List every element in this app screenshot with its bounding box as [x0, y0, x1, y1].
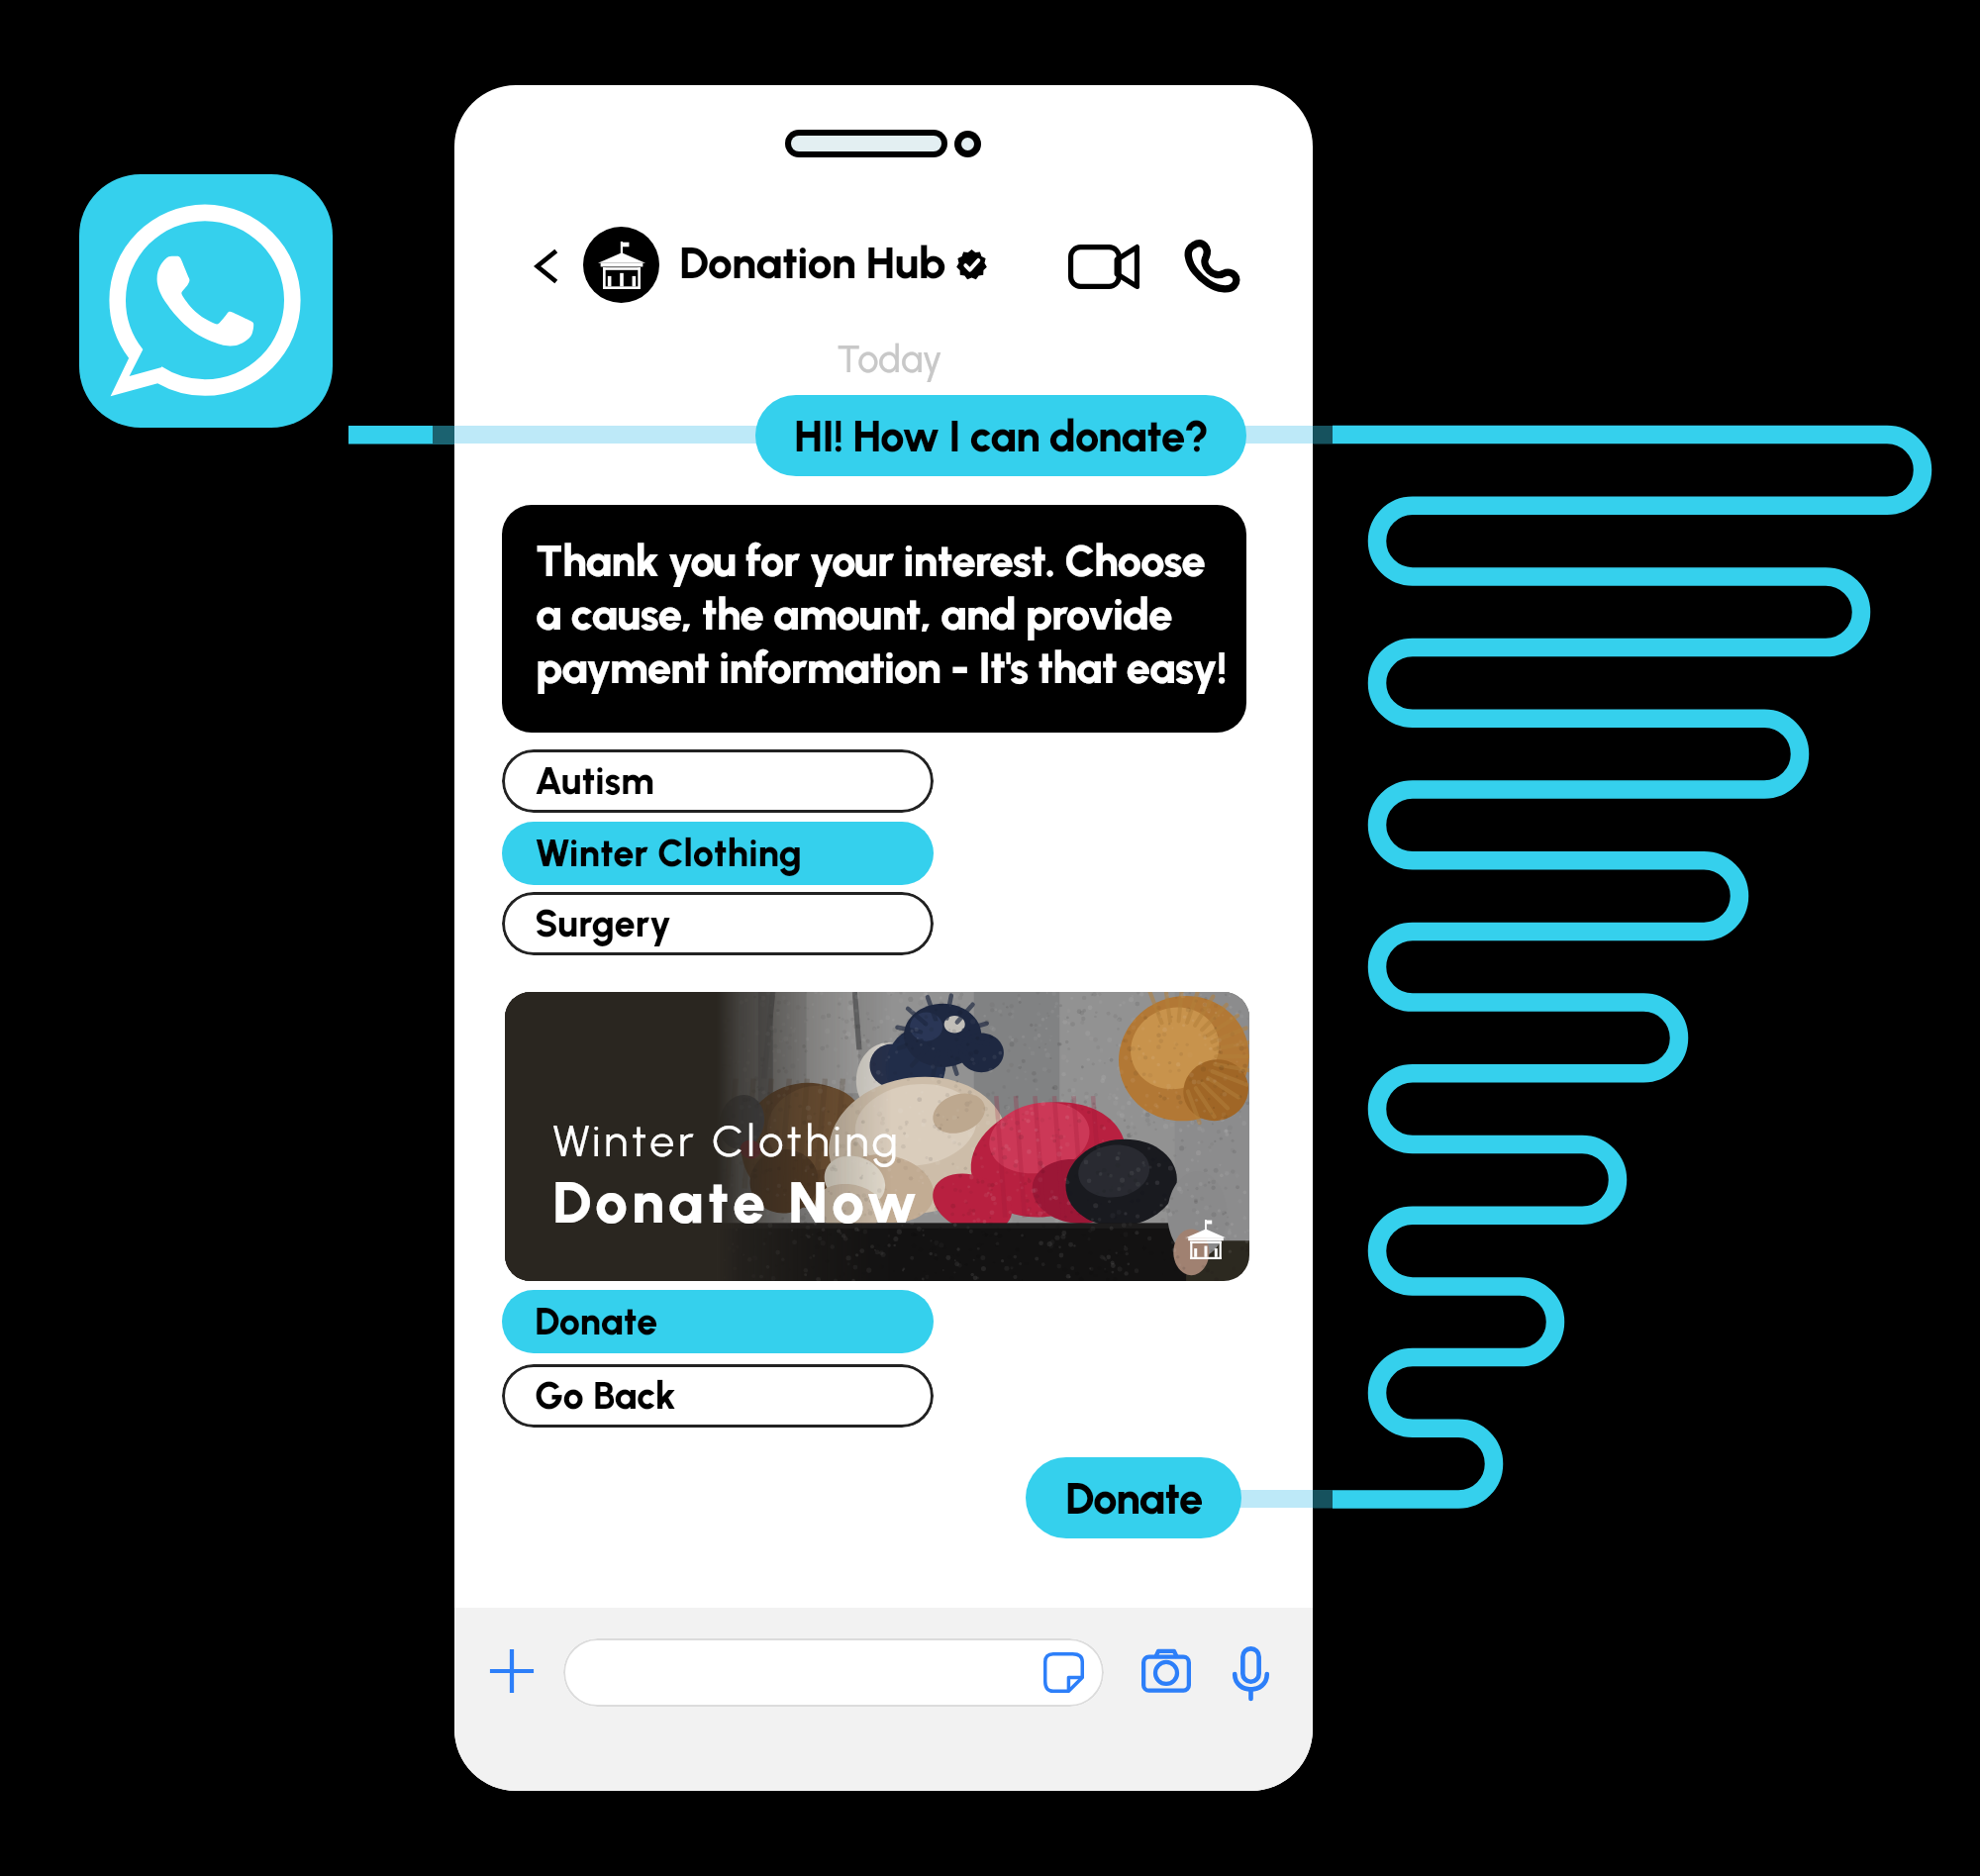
staticText: Thank you for your interest. Choose a ca…	[536, 535, 1227, 694]
staticText: Today	[460, 337, 1313, 382]
button[interactable]: Message	[563, 1638, 1104, 1707]
button[interactable]: Attach	[488, 1647, 536, 1695]
staticText: Winter Clothing	[535, 831, 803, 876]
button[interactable]: Donation Hub profile	[583, 227, 659, 303]
button[interactable]: Donate	[502, 1290, 934, 1353]
staticText: Autism	[535, 758, 654, 804]
button[interactable]: Surgery	[502, 892, 934, 955]
button[interactable]: Back	[523, 244, 568, 289]
button[interactable]: Voice call	[1182, 239, 1240, 294]
button[interactable]: Winter Clothing - Donate Now	[505, 992, 1249, 1281]
staticText: HI! How I can donate?	[794, 410, 1209, 462]
button[interactable]: Voice message	[1233, 1646, 1269, 1700]
button[interactable]: Video call	[1068, 245, 1139, 289]
button[interactable]: Camera	[1141, 1649, 1191, 1693]
staticText: Go Back	[535, 1373, 676, 1419]
staticText: Donate	[535, 1299, 658, 1344]
staticText: Donate	[1065, 1472, 1203, 1525]
button[interactable]: WhatsApp	[79, 174, 333, 428]
button[interactable]: Donate	[1026, 1457, 1241, 1538]
button[interactable]: Go Back	[502, 1364, 934, 1428]
staticText: Winter Clothing	[552, 1114, 902, 1167]
staticText: Surgery	[535, 901, 672, 946]
staticText: Donation Hub	[679, 236, 946, 289]
button[interactable]: HI! How I can donate?	[755, 395, 1246, 476]
staticText: Donate Now	[552, 1167, 922, 1237]
button[interactable]: Autism	[502, 749, 934, 813]
button[interactable]: Winter Clothing	[502, 822, 934, 885]
